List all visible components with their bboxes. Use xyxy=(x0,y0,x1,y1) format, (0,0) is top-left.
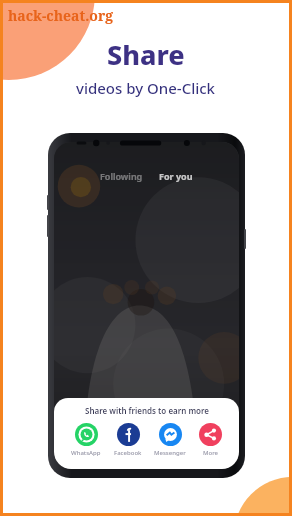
button[interactable]: For you xyxy=(153,168,199,184)
button[interactable]: Following xyxy=(94,168,149,184)
button[interactable]: Messenger xyxy=(152,422,188,458)
staticText: For you xyxy=(159,170,193,182)
staticText: Share with friends to earn more xyxy=(85,405,209,416)
staticText: hack-cheat.org xyxy=(8,6,114,25)
staticText: Messenger xyxy=(154,449,186,457)
staticText: videos by One-Click xyxy=(76,78,216,98)
staticText: Share xyxy=(107,36,185,73)
button[interactable]: Jennefer Smith xyxy=(59,422,138,439)
staticText: More xyxy=(203,449,219,457)
button[interactable]: Facebook xyxy=(112,422,144,458)
button[interactable]: More xyxy=(197,422,224,458)
staticText: Facebook xyxy=(114,449,142,457)
staticText: Following xyxy=(100,170,143,182)
staticText: Jennefer Smith xyxy=(80,425,138,436)
button[interactable]: WhatsApp xyxy=(69,422,103,458)
staticText: WhatsApp xyxy=(71,449,101,457)
